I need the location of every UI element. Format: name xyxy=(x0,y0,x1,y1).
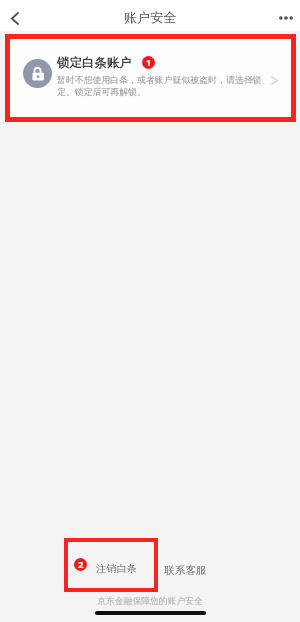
staticText: 1 xyxy=(146,56,152,69)
button[interactable]: Back xyxy=(1,4,29,32)
staticText: 账户安全 xyxy=(124,9,177,26)
staticText: 联系客服 xyxy=(164,564,207,577)
staticText: 2 xyxy=(78,558,84,571)
button[interactable]: More options xyxy=(272,4,300,32)
button[interactable]: 2 xyxy=(74,562,137,575)
button[interactable]: 联系客服 xyxy=(159,560,212,581)
staticText: 锁定白条账户 xyxy=(57,55,132,71)
staticText: 京东金融保障您的账户安全 xyxy=(0,596,300,607)
staticText: 暂时不想使用白条，或者账户疑似被盗时，请选择锁定。锁定后可再解锁。 xyxy=(57,74,266,98)
button[interactable] xyxy=(9,38,291,117)
staticText: 注销白条 xyxy=(96,562,137,575)
